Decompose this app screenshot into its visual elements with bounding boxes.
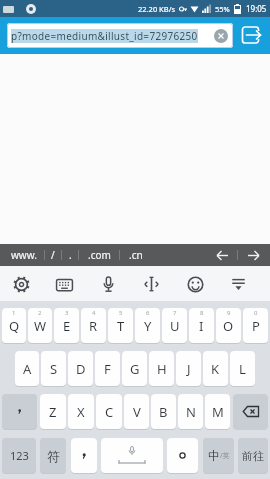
- button[interactable]: V: [124, 394, 149, 429]
- staticText: 3: [65, 309, 69, 317]
- button[interactable]: K: [203, 351, 228, 386]
- staticText: E: [63, 317, 71, 335]
- staticText: 55%: [215, 4, 230, 14]
- staticText: p?mode=medium&illust_id=72976250: [11, 29, 198, 43]
- button[interactable]: [167, 438, 198, 473]
- staticText: 22.20 KB/s: [138, 4, 176, 14]
- button[interactable]: 1: [2, 308, 26, 343]
- staticText: L: [239, 360, 246, 378]
- button[interactable]: 2: [28, 308, 52, 343]
- staticText: .cn: [129, 248, 143, 262]
- staticText: www.: [11, 248, 37, 262]
- staticText: 符: [47, 448, 60, 464]
- staticText: R: [89, 317, 98, 335]
- staticText: J: [187, 360, 191, 378]
- staticText: U: [170, 317, 180, 335]
- staticText: W: [34, 317, 47, 335]
- button[interactable]: 中: [203, 438, 234, 473]
- button[interactable]: 7: [162, 308, 187, 343]
- button[interactable]: Z: [40, 394, 66, 429]
- staticText: C: [105, 403, 114, 421]
- button[interactable]: H: [149, 351, 174, 386]
- button[interactable]: F: [95, 351, 120, 386]
- button[interactable]: [233, 394, 268, 430]
- button[interactable]: 8: [189, 308, 214, 343]
- button[interactable]: X: [68, 394, 94, 429]
- staticText: 19:05: [246, 3, 267, 14]
- button[interactable]: [182, 271, 208, 297]
- staticText: H: [157, 360, 167, 378]
- staticText: 6: [146, 309, 150, 317]
- button[interactable]: G: [122, 351, 147, 386]
- staticText: O: [223, 317, 234, 335]
- staticText: M: [212, 403, 224, 421]
- button[interactable]: 123: [2, 438, 36, 473]
- button[interactable]: [95, 271, 121, 297]
- button[interactable]: [214, 29, 228, 43]
- button[interactable]: www.: [4, 244, 44, 266]
- staticText: 中: [208, 448, 220, 463]
- button[interactable]: [238, 244, 268, 266]
- button[interactable]: [207, 244, 237, 266]
- staticText: B: [159, 403, 168, 421]
- staticText: G: [130, 360, 140, 378]
- staticText: S: [50, 360, 58, 378]
- button[interactable]: /: [45, 244, 61, 266]
- staticText: 9: [227, 309, 231, 317]
- staticText: Z: [49, 403, 57, 421]
- button[interactable]: [2, 394, 37, 429]
- staticText: .: [69, 248, 72, 262]
- staticText: .com: [88, 248, 111, 262]
- button[interactable]: [51, 271, 77, 297]
- button[interactable]: 4: [81, 308, 106, 343]
- button[interactable]: 0: [243, 308, 268, 343]
- staticText: 8: [200, 309, 204, 317]
- button[interactable]: p?mode=medium&illust_id=72976250: [7, 23, 233, 48]
- button[interactable]: N: [178, 394, 203, 429]
- button[interactable]: [101, 438, 163, 473]
- button[interactable]: C: [96, 394, 122, 429]
- button[interactable]: .cn: [120, 244, 152, 266]
- staticText: A: [23, 360, 32, 378]
- button[interactable]: [8, 271, 34, 297]
- staticText: K: [211, 360, 220, 378]
- staticText: T: [117, 317, 125, 335]
- staticText: 1: [12, 309, 16, 317]
- button[interactable]: L: [230, 351, 255, 386]
- staticText: 4: [92, 309, 96, 317]
- staticText: 7: [173, 309, 177, 317]
- staticText: 5: [119, 309, 123, 317]
- staticText: /: [51, 248, 55, 262]
- button[interactable]: 前往: [238, 438, 268, 473]
- button[interactable]: A: [15, 351, 39, 386]
- button[interactable]: S: [41, 351, 66, 386]
- button[interactable]: [239, 23, 265, 49]
- button[interactable]: [71, 438, 97, 473]
- staticText: Y: [144, 317, 152, 335]
- staticText: F: [104, 360, 111, 378]
- button[interactable]: 3: [54, 308, 79, 343]
- staticText: 前往: [242, 449, 264, 463]
- button[interactable]: M: [205, 394, 230, 429]
- staticText: N: [186, 403, 196, 421]
- staticText: 0: [254, 309, 258, 317]
- button[interactable]: .com: [79, 244, 119, 266]
- button[interactable]: J: [176, 351, 201, 386]
- staticText: D: [76, 360, 86, 378]
- button[interactable]: D: [68, 351, 93, 386]
- button[interactable]: 符: [40, 438, 66, 473]
- button[interactable]: 5: [108, 308, 133, 343]
- button[interactable]: .: [62, 244, 78, 266]
- staticText: 123: [10, 448, 29, 463]
- button[interactable]: [225, 271, 251, 297]
- button[interactable]: 6: [135, 308, 160, 343]
- staticText: Q: [9, 317, 20, 335]
- staticText: /英: [220, 451, 230, 461]
- staticText: 2: [38, 309, 42, 317]
- button[interactable]: [138, 271, 164, 297]
- button[interactable]: B: [151, 394, 176, 429]
- staticText: X: [77, 403, 85, 421]
- staticText: I: [199, 317, 204, 335]
- staticText: V: [133, 403, 141, 421]
- button[interactable]: 9: [216, 308, 241, 343]
